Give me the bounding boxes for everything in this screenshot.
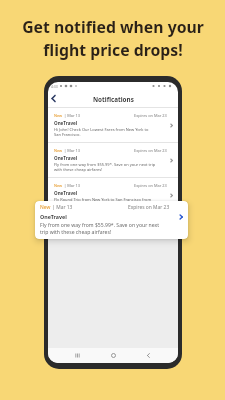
staticText: | Mar 13 [63, 113, 80, 118]
staticText: trip with these cheap airfares! [40, 229, 112, 236]
staticText: OneTravel [40, 213, 67, 220]
button[interactable]: New [48, 178, 178, 213]
staticText: | Mar 13 [63, 183, 80, 188]
staticText: Notifications [93, 95, 134, 104]
staticText: 4:33 [51, 84, 58, 89]
staticText: OneTravel [54, 155, 78, 161]
staticText: $103.99* [54, 202, 72, 207]
staticText: New [54, 183, 63, 188]
button[interactable]: Back [142, 349, 155, 362]
staticText: with these cheap airfares! [54, 167, 103, 172]
staticText: flight price drops! [43, 39, 183, 61]
staticText: Expires on Mar 23 [134, 183, 167, 188]
staticText: New [54, 113, 63, 118]
staticText: New [40, 204, 51, 211]
staticText: Fly from one way from $55.99*. Save on y… [40, 222, 160, 229]
staticText: Get notified when your [22, 16, 204, 38]
staticText: Expires on Mar 23 [134, 113, 167, 118]
staticText: Fly from one way from $55.99*. Save on y… [54, 162, 156, 167]
staticText: | Mar 13 [51, 204, 73, 211]
staticText: OneTravel [54, 120, 78, 126]
staticText: Expires on Mar 23 [128, 204, 170, 211]
staticText: OneTravel [54, 190, 78, 196]
button[interactable]: Home [107, 349, 120, 362]
staticText: Fly Round Trip from New York to San Fran… [54, 197, 152, 202]
button[interactable]: New [48, 108, 178, 143]
button[interactable]: New [35, 201, 188, 239]
staticText: | Mar 13 [63, 148, 80, 153]
staticText: San Francisco. [54, 132, 81, 137]
staticText: New [54, 148, 63, 153]
button[interactable]: New [48, 143, 178, 178]
button[interactable]: Recents [71, 349, 84, 362]
button[interactable]: Back [48, 93, 59, 104]
staticText: Hi John! Check Our Lowest Fares from New… [54, 127, 149, 132]
staticText: Expires on Mar 23 [134, 148, 167, 153]
